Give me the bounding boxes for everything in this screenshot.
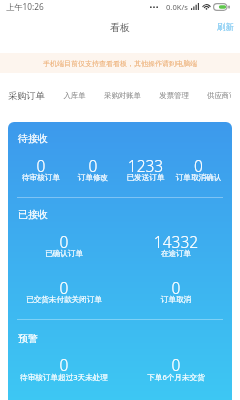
staticText: 待审核订单: [15, 173, 67, 183]
staticText: 1233: [119, 155, 172, 173]
staticText: 已交货未付款关闭订单: [8, 295, 120, 305]
staticText: 已接收: [18, 208, 48, 221]
staticText: 采购对账单: [104, 91, 141, 100]
staticText: 已确认订单: [8, 249, 120, 259]
staticText: 0: [120, 277, 232, 295]
staticText: 0: [172, 155, 225, 173]
staticText: 入库单: [63, 91, 86, 100]
staticText: 待审核订单超过3天未处理: [8, 372, 120, 382]
staticText: 订单取消: [120, 295, 232, 305]
staticText: 在途订单: [120, 249, 232, 259]
staticText: 已发送订单: [119, 173, 172, 183]
button[interactable]: 供应商审核: [198, 86, 240, 105]
staticText: 待接收: [18, 132, 48, 145]
staticText: 订单取消确认: [172, 173, 225, 183]
staticText: 看板: [110, 21, 130, 34]
staticText: 0: [8, 277, 120, 295]
staticText: 供应商审核: [207, 91, 231, 100]
staticText: 下单6个月未交货: [120, 372, 232, 382]
staticText: 刷新: [217, 22, 234, 33]
staticText: 订单修改: [67, 173, 119, 183]
staticText: 14332: [120, 231, 232, 249]
staticText: 预警: [18, 332, 38, 345]
staticText: 上午10:26: [6, 1, 44, 12]
staticText: 手机端目前仅支持查看看板，其他操作请到电脑端: [43, 59, 197, 68]
button[interactable]: 采购对账单: [95, 86, 150, 105]
staticText: 0: [8, 354, 120, 372]
staticText: 采购订单: [8, 90, 45, 102]
staticText: 0: [8, 231, 120, 249]
staticText: 0: [120, 354, 232, 372]
staticText: 0.0K/s: [166, 2, 188, 12]
button[interactable]: 刷新: [211, 17, 240, 38]
button[interactable]: 采购订单: [0, 86, 54, 106]
staticText: 发票管理: [159, 91, 189, 100]
staticText: 0: [15, 155, 67, 173]
button[interactable]: 发票管理: [150, 86, 198, 105]
staticText: 0: [67, 155, 119, 173]
button[interactable]: 入库单: [54, 86, 95, 105]
